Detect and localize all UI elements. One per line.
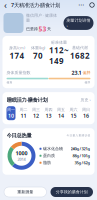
staticText: 天	[47, 26, 51, 31]
staticText: 分享我的膳食计划	[56, 189, 88, 194]
staticText: 已坚持	[26, 26, 38, 31]
staticText: 1000	[15, 150, 27, 157]
staticText: 240g/321g	[70, 146, 90, 151]
staticText: •••	[78, 2, 84, 8]
staticText: 偏瘦	[6, 81, 12, 84]
staticText: 16	[83, 112, 89, 119]
staticText: 11	[20, 112, 26, 119]
button[interactable]: 历史 ›	[80, 97, 90, 102]
staticText: 15	[70, 112, 76, 119]
staticText: 12	[33, 112, 39, 119]
button[interactable]: 重新测量	[4, 187, 46, 197]
staticText: ‹	[4, 0, 7, 11]
staticText: 碳水化合物	[43, 146, 63, 151]
staticText: 1682	[70, 50, 90, 61]
button[interactable]: Close	[87, 1, 97, 8]
staticText: 测量计划详情 ›	[66, 18, 90, 28]
staticText: 7天精准活力·膳食计划	[11, 1, 60, 9]
staticText: 今日摄入量建议值	[66, 134, 90, 137]
staticText: 身体质量指数	[6, 70, 30, 75]
staticText: 周三	[32, 107, 40, 112]
button[interactable]: 分享我的膳食计划	[50, 187, 93, 197]
staticText: 基础代谢	[72, 45, 88, 50]
staticText: 标准体重	[51, 40, 67, 45]
staticText: 23.1	[71, 69, 81, 76]
button[interactable]: Back	[0, 0, 11, 10]
button[interactable]: 周一	[6, 106, 15, 120]
button[interactable]: 周五	[56, 106, 65, 120]
staticText: 2014	[17, 157, 25, 162]
staticText: 周四	[44, 107, 52, 112]
staticText: 112~149	[49, 45, 69, 66]
staticText: 13	[45, 112, 51, 119]
staticText: 脂肪	[43, 160, 51, 165]
staticText: 14	[58, 112, 64, 119]
staticText: 体重(kg)	[31, 45, 45, 50]
button[interactable]: 周六	[69, 106, 78, 120]
staticText: 10	[8, 112, 14, 119]
staticText: 周一	[7, 107, 15, 112]
staticText: 周六	[69, 107, 77, 112]
button[interactable]: 周二	[19, 106, 28, 120]
staticText: 睡眠活力·膳食计划	[6, 96, 47, 103]
button[interactable]: 周三	[31, 106, 40, 120]
button[interactable]: More	[76, 1, 87, 8]
staticText: 偏胖	[81, 70, 90, 75]
staticText: 35g/62g	[74, 160, 90, 165]
staticText: 周五	[57, 107, 65, 112]
staticText: 蛋白质	[43, 153, 55, 158]
staticText: 53	[38, 24, 46, 33]
button[interactable]: 周四	[44, 106, 53, 120]
staticText: 周日	[82, 107, 90, 112]
staticText: 偏胖	[84, 81, 90, 84]
staticText: 88g/101g	[72, 153, 90, 158]
staticText: 今日总热量	[6, 132, 31, 139]
staticText: 重新测量	[17, 189, 33, 194]
button[interactable]: 测量计划详情 ›	[63, 16, 93, 30]
staticText: 身高(cm)	[9, 45, 25, 50]
button[interactable]: 周日	[81, 106, 90, 120]
staticText: 周二	[19, 107, 27, 112]
staticText: 微信用户 · 健康体重	[26, 13, 57, 23]
staticText: 70	[33, 50, 43, 61]
staticText: 历史 ›	[80, 97, 90, 102]
staticText: 174	[9, 50, 24, 61]
